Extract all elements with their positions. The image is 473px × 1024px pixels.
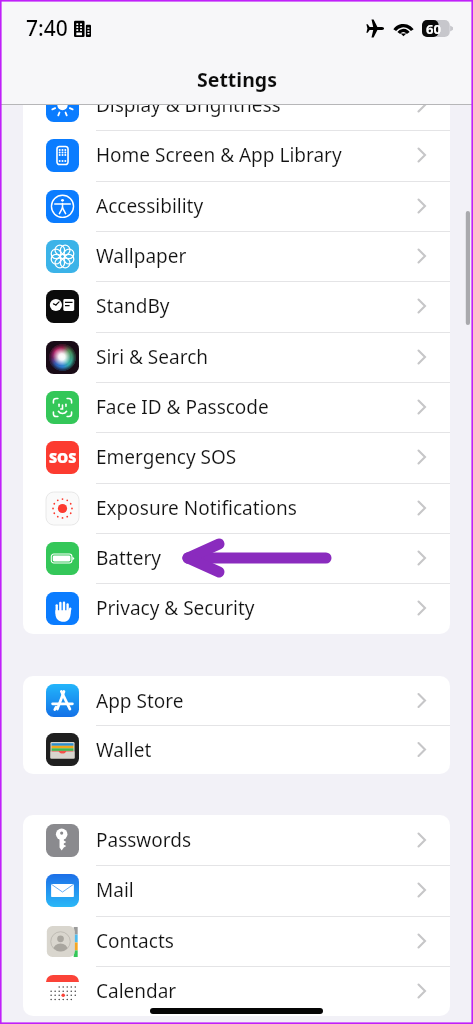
staticText: Privacy & Security bbox=[96, 595, 255, 621]
button[interactable]: Accessibility bbox=[23, 181, 450, 231]
button[interactable]: Wallpaper bbox=[23, 231, 450, 281]
staticText: Accessibility bbox=[96, 193, 204, 219]
staticText: Contacts bbox=[96, 928, 174, 954]
staticText: 7:40 bbox=[26, 14, 68, 43]
staticText: SOS bbox=[49, 448, 77, 467]
staticText: Exposure Notifications bbox=[96, 495, 297, 521]
button[interactable]: Face ID & Passcode bbox=[23, 382, 450, 432]
staticText: App Store bbox=[96, 688, 184, 714]
button[interactable]: Siri & Search bbox=[23, 332, 450, 382]
staticText: Siri & Search bbox=[96, 344, 209, 370]
staticText: Emergency SOS bbox=[96, 444, 237, 470]
button[interactable]: Passwords bbox=[23, 815, 450, 865]
button[interactable]: Mail bbox=[23, 865, 450, 915]
staticText: Mail bbox=[96, 877, 134, 903]
button[interactable]: SOS bbox=[23, 432, 450, 482]
button[interactable]: App Store bbox=[23, 676, 450, 725]
button[interactable]: Contacts bbox=[23, 916, 450, 966]
staticText: Wallet bbox=[96, 737, 152, 763]
staticText: Calendar bbox=[96, 978, 177, 1004]
staticText: StandBy bbox=[96, 293, 170, 319]
staticText: Settings bbox=[197, 66, 277, 93]
staticText: Passwords bbox=[96, 827, 192, 853]
button[interactable]: StandBy bbox=[23, 281, 450, 331]
staticText: Face ID & Passcode bbox=[96, 394, 269, 420]
staticText: 60 bbox=[426, 20, 441, 37]
staticText: Display & Brightness bbox=[96, 105, 281, 118]
button[interactable]: Home Screen & App Library bbox=[23, 130, 450, 180]
button[interactable]: Calendar bbox=[23, 966, 450, 1016]
staticText: Home Screen & App Library bbox=[96, 142, 342, 168]
button[interactable]: Privacy & Security bbox=[23, 583, 450, 633]
button[interactable]: Wallet bbox=[23, 725, 450, 774]
staticText: Battery bbox=[96, 545, 161, 571]
staticText: Wallpaper bbox=[96, 243, 187, 269]
button[interactable]: Display & Brightness bbox=[23, 105, 450, 130]
button[interactable]: Battery bbox=[23, 533, 450, 583]
button[interactable]: Exposure Notifications bbox=[23, 483, 450, 533]
